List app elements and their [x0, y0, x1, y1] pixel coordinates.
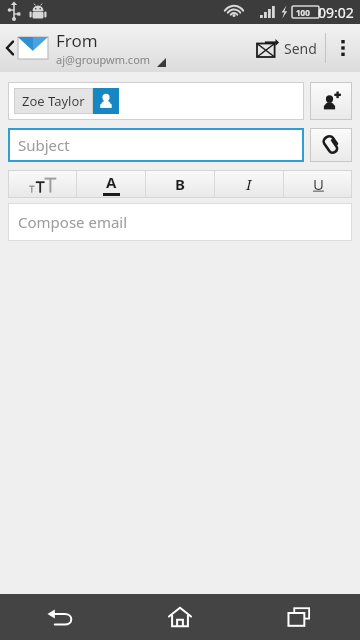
- button[interactable]: Navigate up, From aj@groupwm.com: [0, 24, 249, 72]
- button[interactable]: Subject: [8, 128, 304, 162]
- button[interactable]: More options: [326, 24, 360, 72]
- button[interactable]: Add contact: [310, 82, 352, 120]
- staticText: aj@groupwm.com: [56, 52, 151, 67]
- button[interactable]: Text size: [8, 170, 76, 198]
- button[interactable]: Zoe Taylor: [8, 82, 304, 120]
- button[interactable]: Underline: [284, 170, 352, 198]
- staticText: From: [56, 29, 98, 52]
- button[interactable]: Bold: [146, 170, 214, 198]
- button[interactable]: Home: [120, 594, 240, 640]
- button[interactable]: Back: [0, 594, 120, 640]
- staticText: Zoe Taylor: [22, 92, 85, 110]
- button[interactable]: Send: [249, 24, 325, 72]
- staticText: 09:02: [318, 3, 354, 22]
- staticText: B: [175, 174, 185, 194]
- staticText: Compose email: [18, 212, 128, 232]
- staticText: Subject: [18, 135, 70, 155]
- staticText: Send: [284, 39, 317, 58]
- button[interactable]: Text colour: [77, 170, 145, 198]
- staticText: U: [313, 174, 324, 194]
- button[interactable]: Zoe Taylor: [14, 88, 119, 114]
- staticText: 100: [296, 7, 310, 18]
- button[interactable]: Compose email: [8, 203, 352, 241]
- staticText: I: [246, 174, 252, 194]
- button[interactable]: Recent apps: [240, 594, 360, 640]
- staticText: A: [106, 172, 117, 192]
- button[interactable]: Italic: [215, 170, 283, 198]
- button[interactable]: Attach file: [310, 128, 352, 162]
